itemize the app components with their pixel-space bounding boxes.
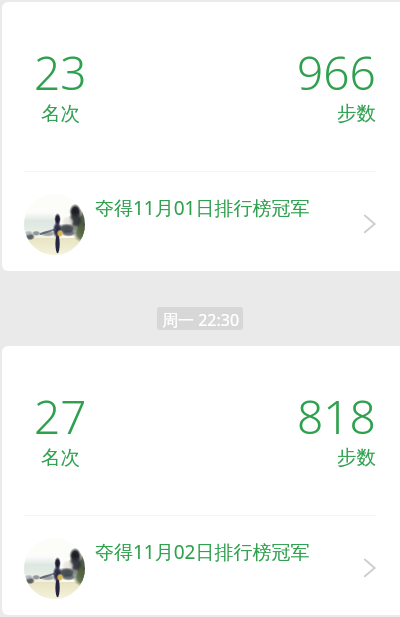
button[interactable]: 夺得11月01日排行榜冠军 [2, 180, 400, 270]
staticText: 966 [297, 41, 376, 104]
staticText: 名次 [41, 445, 80, 470]
staticText: 23 [34, 41, 87, 104]
button[interactable]: 23 [2, 2, 400, 271]
button[interactable]: 27 [2, 346, 400, 615]
staticText: 27 [34, 385, 87, 448]
staticText: 夺得11月02日排行榜冠军 [95, 539, 310, 565]
button[interactable]: 周一 22:30 [161, 307, 239, 330]
staticText: 名次 [41, 101, 80, 126]
staticText: 夺得11月01日排行榜冠军 [95, 195, 310, 221]
staticText: 818 [297, 385, 376, 448]
staticText: 步数 [337, 101, 376, 126]
staticText: 步数 [337, 445, 376, 470]
button[interactable]: Open ranking detail [352, 548, 388, 584]
button[interactable]: Open ranking detail [352, 204, 388, 240]
button[interactable]: 夺得11月02日排行榜冠军 [2, 524, 400, 614]
staticText: 周一 22:30 [162, 309, 240, 330]
